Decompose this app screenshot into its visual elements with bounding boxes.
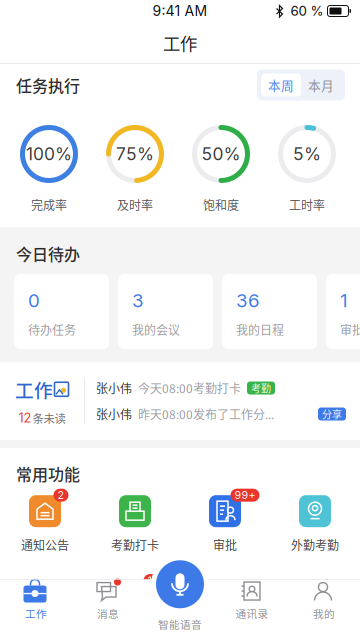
button[interactable]: 99+ [180,495,270,554]
staticText: 分享 [322,407,342,421]
staticText: 工时率 [289,196,325,213]
staticText: 2 [57,489,64,502]
staticText: 36 [236,289,260,312]
button[interactable]: 本月 [301,73,341,96]
button[interactable]: 外勤考勤 [270,495,360,554]
staticText: 本周 [268,76,294,94]
staticText: 10 [147,574,158,587]
staticText: 75% [116,143,154,164]
staticText: 通知公告 [21,536,69,554]
staticText: 审批 [213,536,237,554]
button[interactable]: 我的 [288,579,360,624]
button[interactable]: 张小伟 [96,401,346,427]
staticText: 我的日程 [236,321,284,338]
staticText: 99+ [234,489,255,502]
staticText: 外勤考勤 [291,536,339,554]
staticText: 张小伟 [96,379,132,397]
button[interactable]: 工作 [0,362,84,440]
staticText: 我的会议 [132,321,180,338]
staticText: 3 [132,289,144,312]
staticText: 60 % [290,3,323,19]
staticText: 消息 [97,606,119,621]
staticText: 本月 [308,76,334,94]
staticText: 100% [26,143,72,164]
button[interactable]: 3 [118,274,213,349]
staticText: 待办任务 [28,321,76,338]
staticText: 考勤 [251,381,271,395]
staticText: 常用功能 [16,462,80,485]
staticText: 张小伟 [96,405,132,423]
staticText: 任务执行 [16,73,80,97]
staticText: 今日待办 [16,242,80,265]
staticText: 我的 [313,606,335,621]
staticText: 考勤打卡 [111,536,159,554]
button[interactable]: 36 [222,274,317,349]
staticText: 及时率 [117,196,153,213]
staticText: 今天08:00考勤打卡 [138,379,241,397]
staticText: 昨天08:00发布了工作分... [138,405,274,423]
staticText: 50% [201,143,240,164]
staticText: 9:41 AM [152,2,207,19]
button[interactable]: 张小伟 [96,375,346,401]
staticText: 0 [28,289,40,312]
button[interactable]: 智能语音 [144,579,216,640]
button[interactable]: 通讯录 [216,579,288,624]
staticText: 1 [340,289,348,312]
staticText: 审批 [340,321,360,338]
button[interactable]: 考勤打卡 [90,495,180,554]
staticText: 工作 [25,606,47,621]
staticText: 工作 [15,376,53,403]
staticText: 通讯录 [235,606,268,621]
button[interactable]: 2 [0,495,90,554]
staticText: 工作 [163,30,197,56]
staticText: 智能语音 [158,616,202,632]
staticText: 完成率 [31,196,67,213]
staticText: 条未读 [32,410,65,426]
button[interactable]: 本周 [261,73,301,96]
staticText: 饱和度 [203,196,239,213]
staticText: 5% [293,143,321,164]
button[interactable]: 消息 [72,579,144,624]
button[interactable]: 0 [14,274,109,349]
staticText: 12 [18,410,31,426]
button[interactable]: 工作 [0,579,72,624]
button[interactable]: 1 [326,274,360,349]
